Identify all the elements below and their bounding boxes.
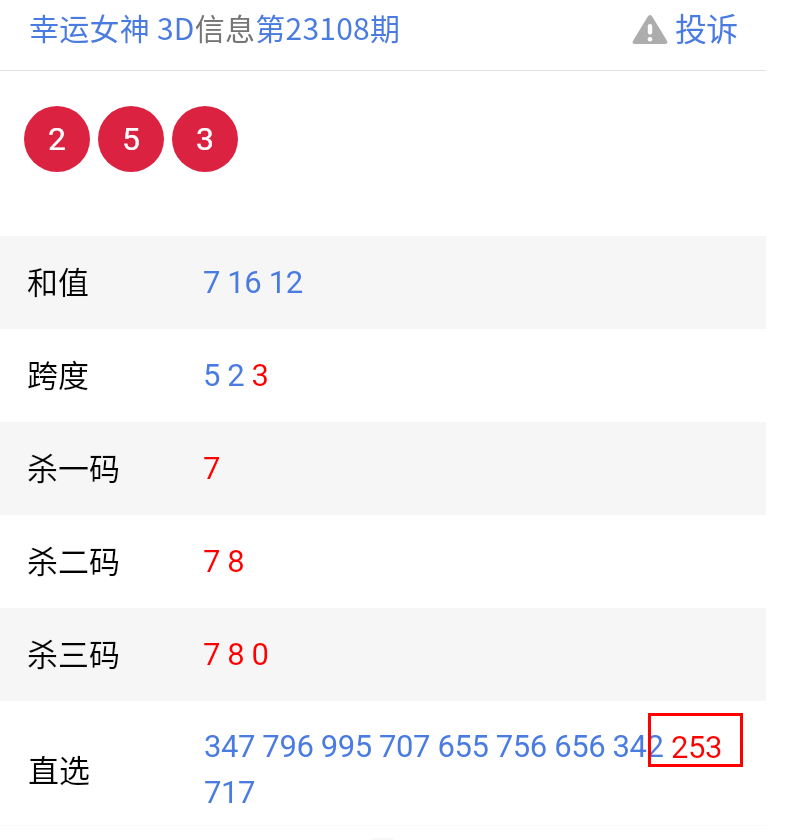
staticText: 5 2 3 [203,357,269,393]
button[interactable]: 杀一码 [0,422,766,515]
staticText: 直选 [28,746,90,791]
staticText: 717 [204,774,256,810]
staticText: 杀二码 [27,537,120,582]
staticText: 和值 [27,258,89,303]
button[interactable]: 杀二码 [0,515,766,608]
button[interactable]: 投诉 [631,4,738,50]
staticText: 7 8 0 [203,636,269,672]
staticText: 投诉 [675,4,738,50]
staticText: 5 [122,120,140,158]
button[interactable]: 和值 [0,236,766,329]
button[interactable]: 2 [24,106,90,172]
button[interactable]: 5 [98,106,164,172]
button[interactable]: 中奖号码 253 [648,713,743,767]
staticText: 杀一码 [27,444,120,489]
staticText: 杀三码 [27,630,120,675]
button[interactable]: 杀三码 [0,608,766,701]
staticText: 7 [203,450,221,486]
staticText: 2 [48,120,66,158]
staticText: 幸运女神 3D信息第23108期 [29,5,401,48]
staticText: 347 796 995 707 655 756 656 342 [204,728,664,764]
staticText: 7 8 [203,543,245,579]
button[interactable]: 直选 [0,701,766,825]
button[interactable]: 跨度 [0,329,766,422]
staticText: 253 [671,729,723,765]
staticText: 3 [196,120,214,158]
staticText: 7 16 12 [203,264,303,300]
button[interactable]: 3 [172,106,238,172]
staticText: 跨度 [27,351,89,396]
